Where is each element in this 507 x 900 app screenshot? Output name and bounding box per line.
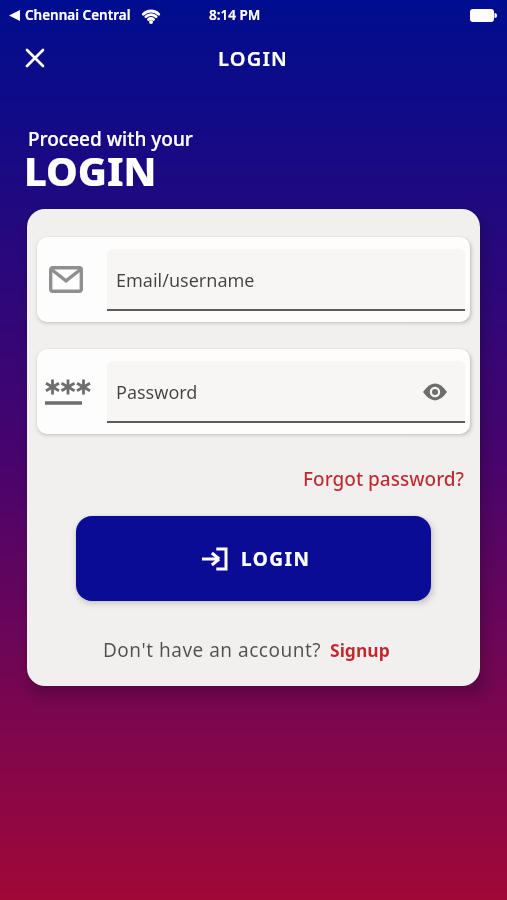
button[interactable] bbox=[18, 41, 52, 75]
staticText: Password bbox=[116, 380, 198, 405]
button[interactable]: Don't have an account? bbox=[103, 637, 390, 663]
staticText: LOGIN bbox=[241, 546, 311, 572]
staticText: 8:14 PM bbox=[209, 6, 261, 24]
button[interactable]: LOGIN bbox=[76, 516, 431, 601]
staticText: Chennai Central bbox=[25, 6, 131, 24]
staticText: Email/username bbox=[116, 268, 255, 293]
staticText: Proceed with your bbox=[28, 126, 193, 152]
staticText: Don't have an account? bbox=[103, 637, 322, 663]
staticText: Signup bbox=[330, 638, 390, 662]
button[interactable]: Password bbox=[37, 349, 470, 434]
staticText: LOGIN bbox=[24, 143, 157, 197]
staticText: LOGIN bbox=[218, 45, 289, 72]
button[interactable]: Email/username bbox=[37, 237, 470, 322]
button[interactable]: Forgot password? bbox=[303, 466, 465, 492]
